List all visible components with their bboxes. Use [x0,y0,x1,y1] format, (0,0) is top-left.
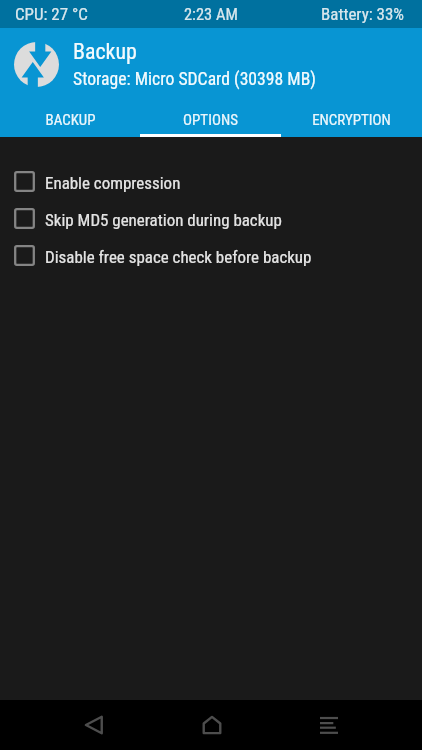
staticText: Backup [73,39,137,65]
staticText: 2:23 AM [184,5,238,24]
button[interactable]: Menu [305,700,352,750]
staticText: Storage: Micro SDCard (30398 MB) [73,69,316,90]
button[interactable]: BACKUP [0,101,140,137]
button[interactable]: Enable compression [0,163,422,200]
staticText: CPU: 27 °C [15,4,88,24]
staticText: BACKUP [45,111,96,129]
button[interactable]: Back [70,700,117,750]
staticText: Skip MD5 generation during backup [45,210,282,230]
button[interactable]: OPTIONS [140,101,281,137]
button[interactable]: Disable free space check before backup [0,237,422,274]
staticText: Enable compression [45,173,181,193]
other: Backup app icon [14,42,59,87]
button[interactable]: Skip MD5 generation during backup [0,200,422,237]
staticText: Battery: 33% [321,4,405,24]
staticText: Disable free space check before backup [45,247,312,267]
button[interactable]: Home [188,700,235,750]
button[interactable]: ENCRYPTION [281,101,422,137]
staticText: ENCRYPTION [312,111,391,129]
staticText: OPTIONS [183,111,238,129]
